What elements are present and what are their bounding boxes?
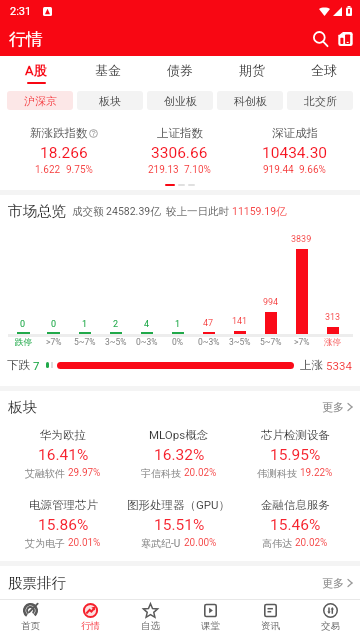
staticText: 15.86% <box>38 516 89 534</box>
staticText: 自选 <box>141 620 160 632</box>
staticText: 跌停 <box>15 337 32 348</box>
staticText: 市场总览 <box>8 202 66 220</box>
staticText: 股票排行 <box>8 574 66 592</box>
button[interactable]: 华为欧拉 <box>5 428 121 480</box>
staticText: 10434.30 <box>262 144 328 162</box>
staticText: 0~3% <box>136 337 158 347</box>
button[interactable]: 深证成指 <box>237 126 352 174</box>
staticText: 11159.19亿 <box>232 205 287 218</box>
staticText: 15.46% <box>270 516 321 534</box>
staticText: 19.22% <box>300 467 333 479</box>
button[interactable]: 科创板 <box>217 91 283 110</box>
staticText: 20.02% <box>184 467 217 479</box>
staticText: 0 <box>51 319 57 330</box>
button[interactable]: 上证指数 <box>122 126 237 174</box>
staticText: 2:31 <box>10 5 32 18</box>
button[interactable]: 资讯 <box>240 600 300 640</box>
button[interactable]: Layout <box>333 27 357 51</box>
staticText: 919.44 <box>263 164 294 176</box>
staticText: 宇信科技 <box>141 467 181 480</box>
button[interactable]: 板块 <box>77 91 143 110</box>
button[interactable]: 沪深京 <box>7 91 73 110</box>
button[interactable]: 债券 <box>144 56 216 88</box>
staticText: 课堂 <box>201 620 220 632</box>
staticText: 18.266 <box>40 144 88 162</box>
staticText: 29.97% <box>68 467 101 479</box>
button[interactable]: 更多 <box>322 576 353 590</box>
staticText: 新涨跌指数 <box>30 126 88 140</box>
button[interactable]: 全球 <box>288 56 360 88</box>
button[interactable]: 新涨跌指数 <box>6 126 122 174</box>
staticText: 寒武纪-U <box>141 537 181 550</box>
staticText: 9.75% <box>66 164 93 176</box>
staticText: 期货 <box>239 62 265 78</box>
staticText: 0% <box>172 337 184 347</box>
staticText: 上证指数 <box>157 126 203 140</box>
staticText: 图形处理器（GPU） <box>127 498 231 512</box>
staticText: 994 <box>263 297 279 308</box>
staticText: 313 <box>325 312 341 323</box>
button[interactable]: MLOps概念 <box>121 428 237 480</box>
staticText: 基金 <box>95 62 121 78</box>
staticText: 3~5% <box>229 337 251 347</box>
staticText: 1.622 <box>35 164 61 176</box>
button[interactable]: 期货 <box>216 56 288 88</box>
button[interactable]: 交易 <box>300 600 360 640</box>
staticText: 3306.66 <box>151 144 208 162</box>
staticText: 资讯 <box>261 620 280 632</box>
button[interactable]: 首页 <box>0 600 60 640</box>
staticText: 2 <box>113 319 119 330</box>
staticText: 板块 <box>99 94 121 108</box>
button[interactable]: 更多 <box>322 400 353 414</box>
button[interactable]: 金融信息服务 <box>237 498 353 550</box>
button[interactable]: 电源管理芯片 <box>5 498 121 550</box>
staticText: 行情 <box>81 620 100 632</box>
staticText: 艾融软件 <box>25 467 65 480</box>
staticText: 板块 <box>8 398 37 416</box>
staticText: 华为欧拉 <box>40 428 86 442</box>
staticText: 债券 <box>167 62 193 78</box>
staticText: 涨停 <box>324 337 341 348</box>
staticText: 交易 <box>321 620 340 632</box>
button[interactable]: 北交所 <box>287 91 353 110</box>
staticText: A股 <box>25 62 47 78</box>
staticText: 20.01% <box>68 537 101 549</box>
button[interactable]: 基金 <box>72 56 144 88</box>
button[interactable]: 图形处理器（GPU） <box>121 498 237 550</box>
staticText: 47 <box>203 318 214 329</box>
staticText: 9.66% <box>299 164 326 176</box>
button[interactable]: 创业板 <box>147 91 213 110</box>
button[interactable]: 芯片检测设备 <box>237 428 353 480</box>
staticText: >7% <box>46 337 62 347</box>
staticText: 1 <box>82 319 88 330</box>
staticText: >7% <box>294 337 310 347</box>
staticText: 北交所 <box>304 94 337 108</box>
staticText: 深证成指 <box>272 126 318 140</box>
staticText: 1 <box>175 319 181 330</box>
staticText: 141 <box>232 316 248 327</box>
button[interactable]: A股 <box>0 56 72 88</box>
staticText: 5~7% <box>74 337 96 347</box>
button[interactable]: 行情 <box>60 600 120 640</box>
staticText: 4 <box>144 319 150 330</box>
staticText: 20.02% <box>295 537 328 549</box>
staticText: 创业板 <box>164 94 197 108</box>
staticText: 5~7% <box>260 337 282 347</box>
button[interactable]: 课堂 <box>180 600 240 640</box>
staticText: 15.95% <box>270 446 321 464</box>
staticText: 0 <box>20 319 26 330</box>
staticText: 219.13 <box>148 164 179 176</box>
staticText: 电源管理芯片 <box>29 498 98 512</box>
staticText: 芯片检测设备 <box>261 428 330 442</box>
staticText: 7.10% <box>184 164 211 176</box>
staticText: 16.32% <box>154 446 205 464</box>
button[interactable]: 自选 <box>120 600 180 640</box>
staticText: 更多 <box>322 576 344 590</box>
staticText: 0~3% <box>198 337 220 347</box>
staticText: 7 <box>33 359 40 372</box>
staticText: 15.51% <box>154 516 205 534</box>
staticText: 科创板 <box>234 94 267 108</box>
staticText: 金融信息服务 <box>261 498 330 512</box>
button[interactable]: Search <box>308 27 332 51</box>
staticText: 全球 <box>311 62 337 78</box>
